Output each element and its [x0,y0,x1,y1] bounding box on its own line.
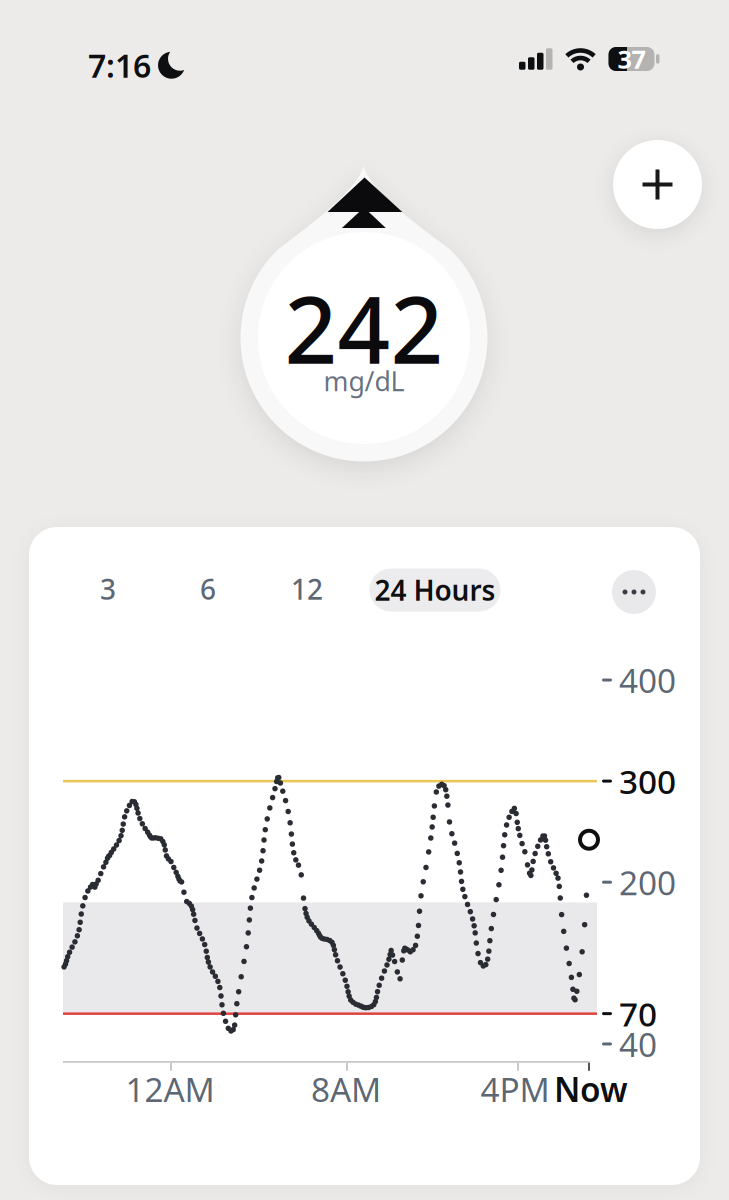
staticText: 8AM [311,1067,381,1111]
staticText: 242 [284,267,443,389]
staticText: 400 [619,658,676,702]
staticText: 12AM [125,1067,214,1111]
staticText: 4PM [480,1067,549,1111]
staticText: 200 [619,860,676,904]
staticText: 24 Hours [374,571,495,609]
staticText: 6 [200,570,216,608]
staticText: 7:16 [88,44,151,86]
button[interactable]: 24 Hours [369,568,500,611]
button[interactable]: Add event [613,140,702,229]
button[interactable]: 6 [178,565,238,612]
staticText: 37 [617,42,645,76]
staticText: 300 [619,759,676,803]
staticText: 40 [619,1022,657,1066]
button[interactable]: 12 [277,565,337,612]
staticText: 3 [100,570,116,608]
button[interactable]: More options [612,570,656,614]
staticText: Now [554,1067,628,1111]
button[interactable]: 3 [78,565,138,612]
staticText: 70 [619,991,657,1036]
staticText: 12 [291,570,323,608]
staticText: mg/dL [323,363,404,399]
